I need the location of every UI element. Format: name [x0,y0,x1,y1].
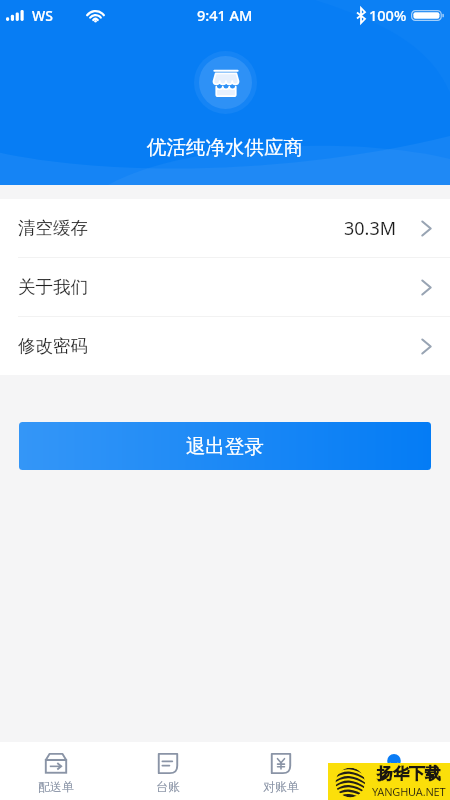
staticText: 台账 [156,779,180,794]
staticText: 退出登录 [186,434,264,459]
button[interactable]: 配送单 [0,742,112,800]
button[interactable]: 修改密码 [0,317,450,375]
staticText: 扬华下载 [377,764,441,784]
button[interactable]: 清空缓存 [0,199,450,258]
staticText: 对账单 [263,779,299,794]
staticText: 100% [369,5,407,25]
staticText: 清空缓存 [18,217,88,239]
staticText: WS [32,6,53,25]
staticText: 优活纯净水供应商 [147,135,303,160]
button[interactable]: 关于我们 [0,258,450,317]
button[interactable]: 我的 [337,742,450,800]
staticText: 修改密码 [18,335,88,357]
staticText: 30.3M [344,216,397,241]
button[interactable]: 退出登录 [19,422,431,470]
staticText: 配送单 [38,779,74,794]
staticText: 我的 [382,779,406,794]
staticText: 9:41 AM [197,5,253,25]
staticText: 关于我们 [18,276,88,298]
staticText: YANGHUA.NET [372,784,446,799]
button[interactable]: 台账 [112,742,224,800]
button[interactable]: 对账单 [224,742,337,800]
